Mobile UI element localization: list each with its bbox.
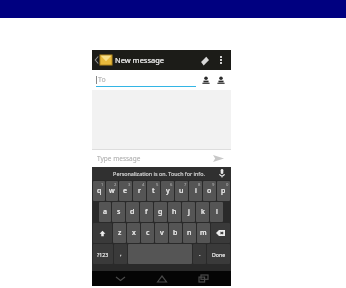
button[interactable]: t: [147, 181, 160, 201]
button[interactable]: Home: [149, 271, 175, 286]
button[interactable]: Personalization is on. Touch for info.: [92, 167, 231, 180]
staticText: .: [199, 250, 201, 258]
staticText: o: [207, 186, 212, 196]
staticText: 0: [226, 182, 229, 188]
button[interactable]: o: [203, 181, 216, 201]
button[interactable]: Recent apps: [190, 271, 216, 286]
staticText: h: [172, 207, 177, 217]
button[interactable]: c: [141, 223, 154, 243]
staticText: l: [216, 207, 218, 217]
staticText: ,: [120, 250, 122, 258]
staticText: v: [160, 228, 164, 238]
button[interactable]: Hide keyboard: [107, 271, 133, 286]
button[interactable]: i: [189, 181, 202, 201]
staticText: p: [221, 186, 226, 196]
button[interactable]: m: [197, 223, 210, 243]
button[interactable]: r: [133, 181, 146, 201]
staticText: 4: [142, 182, 145, 188]
button[interactable]: n: [183, 223, 196, 243]
button[interactable]: ?123: [93, 244, 113, 264]
staticText: Done: [212, 251, 226, 258]
staticText: s: [117, 207, 121, 217]
button[interactable]: p: [217, 181, 230, 201]
button[interactable]: Send: [210, 150, 226, 166]
staticText: j: [188, 207, 190, 217]
button[interactable]: v: [155, 223, 168, 243]
staticText: w: [109, 186, 115, 196]
button[interactable]: y: [161, 181, 174, 201]
button[interactable]: b: [169, 223, 182, 243]
button[interactable]: Navigate up: [94, 55, 99, 65]
staticText: 1: [101, 182, 104, 188]
button[interactable]: s: [112, 202, 125, 222]
button[interactable]: Done: [207, 244, 230, 264]
button[interactable]: u: [175, 181, 188, 201]
button[interactable]: q: [93, 181, 105, 201]
staticText: 8: [198, 182, 201, 188]
button[interactable]: ,: [114, 244, 127, 264]
button[interactable]: x: [127, 223, 140, 243]
button[interactable]: More options: [214, 50, 228, 70]
staticText: a: [103, 207, 108, 217]
staticText: e: [123, 186, 128, 196]
staticText: 9: [212, 182, 215, 188]
button[interactable]: d: [126, 202, 139, 222]
button[interactable]: Add recipient: [215, 74, 227, 86]
button[interactable]: Attach: [196, 50, 212, 70]
staticText: 3: [128, 182, 131, 188]
button[interactable]: Backspace: [211, 223, 230, 243]
staticText: k: [201, 207, 205, 217]
staticText: Personalization is on. Touch for info.: [113, 170, 205, 177]
staticText: x: [132, 228, 136, 238]
staticText: g: [158, 207, 163, 217]
button[interactable]: a: [99, 202, 111, 222]
staticText: To: [98, 75, 106, 85]
button[interactable]: .: [193, 244, 206, 264]
other: Voice input: [219, 169, 225, 178]
button[interactable]: Type message: [97, 154, 210, 163]
staticText: t: [152, 186, 155, 196]
staticText: y: [166, 186, 170, 196]
button[interactable]: l: [210, 202, 223, 222]
button[interactable]: Shift: [93, 223, 112, 243]
button[interactable]: z: [113, 223, 126, 243]
button[interactable]: g: [154, 202, 167, 222]
staticText: c: [146, 228, 150, 238]
staticText: d: [130, 207, 135, 217]
staticText: z: [118, 228, 122, 238]
staticText: 7: [184, 182, 187, 188]
button[interactable]: f: [140, 202, 153, 222]
staticText: r: [138, 186, 141, 196]
staticText: 6: [170, 182, 173, 188]
staticText: f: [145, 207, 148, 217]
staticText: ?123: [97, 251, 109, 258]
button[interactable]: k: [196, 202, 209, 222]
button[interactable]: h: [168, 202, 181, 222]
staticText: q: [97, 186, 102, 196]
staticText: 2: [114, 182, 117, 188]
staticText: New message: [115, 55, 165, 65]
staticText: i: [195, 186, 197, 196]
button[interactable]: To: [96, 73, 196, 87]
staticText: u: [179, 186, 184, 196]
staticText: Type message: [97, 154, 141, 163]
button[interactable]: w: [106, 181, 118, 201]
staticText: b: [173, 228, 178, 238]
button[interactable]: j: [182, 202, 195, 222]
staticText: 5: [156, 182, 159, 188]
staticText: n: [187, 228, 192, 238]
button[interactable]: Add recipient: [200, 74, 212, 86]
button[interactable]: e: [119, 181, 132, 201]
staticText: m: [200, 228, 207, 238]
